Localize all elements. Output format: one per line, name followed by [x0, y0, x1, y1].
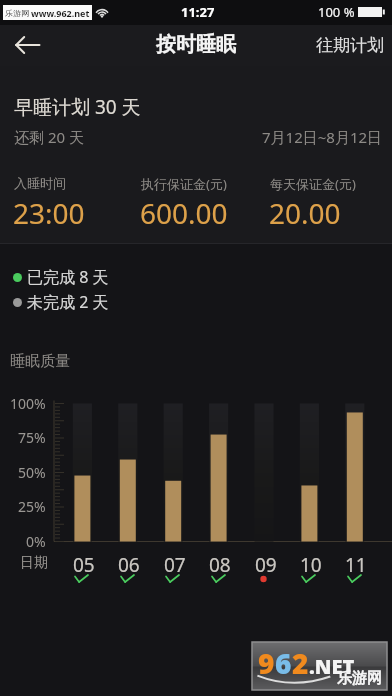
- staticText: www.962.net: [31, 7, 90, 19]
- staticText: 睡眠质量: [10, 352, 70, 371]
- staticText: 11:27: [181, 3, 215, 21]
- staticText: 600.00: [140, 194, 228, 232]
- staticText: 还剩 20 天: [14, 127, 84, 147]
- staticText: 06: [118, 552, 140, 578]
- staticText: 100 %: [318, 3, 355, 21]
- staticText: .NET: [309, 653, 355, 680]
- staticText: 已完成 8 天: [27, 266, 109, 288]
- button[interactable]: Back: [4, 25, 51, 66]
- staticText: 执行保证金(元): [141, 175, 227, 193]
- button[interactable]: 已完成 8 天: [13, 266, 109, 288]
- staticText: 08: [209, 552, 231, 578]
- staticText: 2: [292, 644, 309, 682]
- staticText: 20.00: [269, 194, 341, 232]
- staticText: 入睡时间: [14, 175, 66, 191]
- staticText: 早睡计划 30 天: [14, 94, 141, 120]
- staticText: 05: [73, 552, 95, 578]
- button[interactable]: 未完成 2 天: [13, 291, 109, 313]
- staticText: 23:00: [13, 194, 85, 232]
- staticText: 往期计划: [316, 35, 384, 56]
- staticText: 0%: [26, 532, 46, 551]
- staticText: 6: [275, 644, 292, 682]
- staticText: 75%: [18, 428, 46, 447]
- staticText: 11: [345, 552, 367, 578]
- staticText: 25%: [18, 497, 46, 516]
- staticText: 50%: [18, 463, 46, 482]
- staticText: 乐游网: [337, 669, 382, 688]
- staticText: 按时睡眠: [156, 32, 236, 57]
- staticText: 9: [258, 644, 275, 682]
- staticText: 未完成 2 天: [27, 291, 109, 313]
- staticText: 10: [300, 552, 322, 578]
- staticText: 7月12日~8月12日: [262, 127, 383, 147]
- staticText: 07: [164, 552, 186, 578]
- staticText: 乐游网: [5, 8, 29, 18]
- staticText: 每天保证金(元): [270, 175, 356, 193]
- staticText: 日期: [20, 554, 48, 572]
- button[interactable]: 往期计划: [303, 25, 392, 66]
- staticText: 100%: [10, 394, 46, 413]
- staticText: 09: [255, 552, 277, 578]
